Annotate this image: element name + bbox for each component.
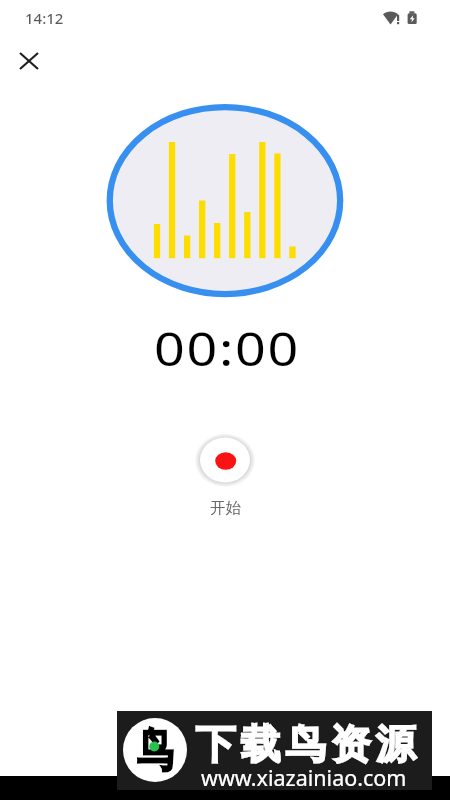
staticText: 鸟 — [137, 722, 173, 780]
staticText: 00:00 — [0, 317, 450, 380]
staticText: 开始 — [210, 498, 241, 518]
staticText: 下载鸟资源 — [193, 719, 418, 769]
button[interactable]: Start recording — [195, 433, 255, 487]
staticText: 14:12 — [25, 8, 64, 28]
button[interactable]: Close — [9, 41, 49, 81]
staticText: www.xiazainiao.com — [201, 763, 407, 792]
